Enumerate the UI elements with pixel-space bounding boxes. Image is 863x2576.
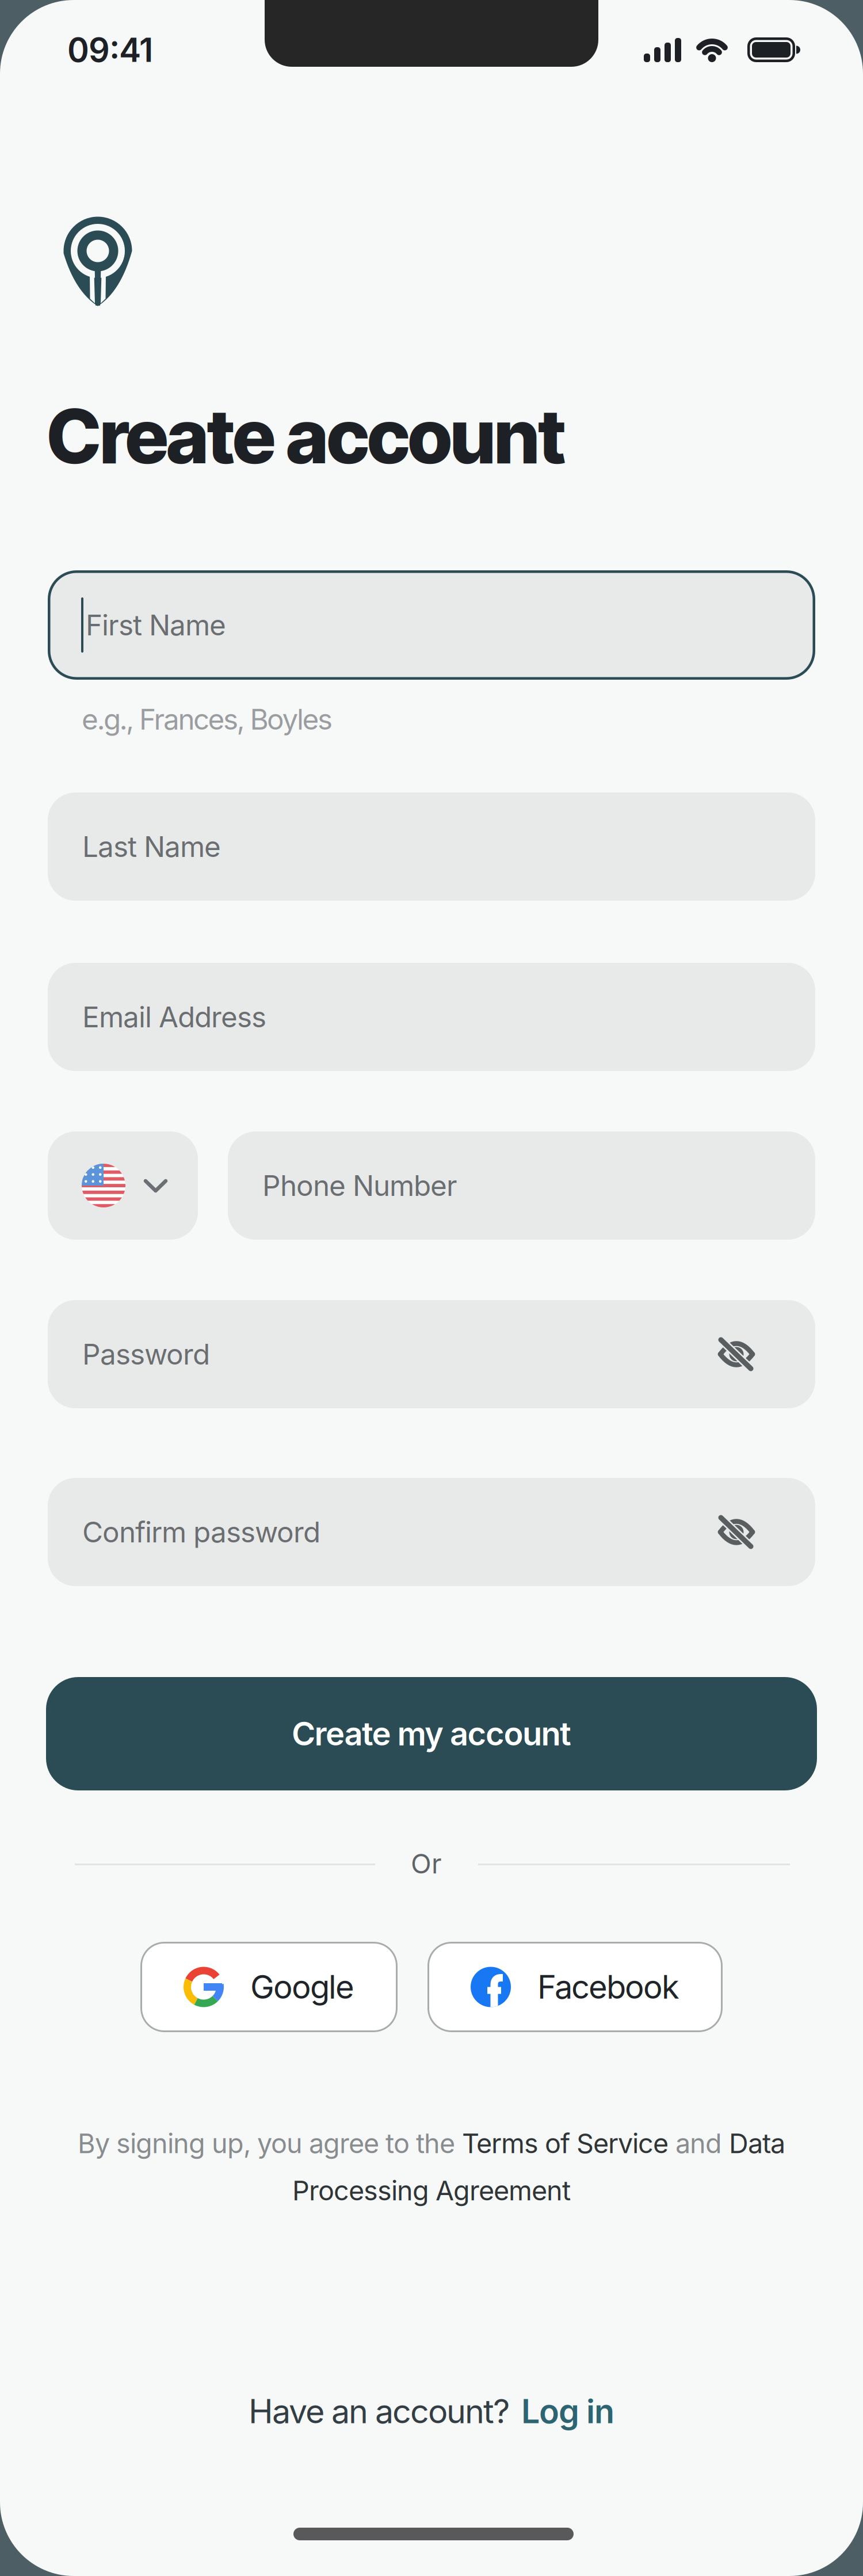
button[interactable]: Phone Number: [228, 1131, 815, 1240]
button[interactable]: Create my account: [46, 1677, 817, 1790]
button[interactable]: Google: [140, 1942, 398, 2032]
staticText: Phone Number: [262, 1168, 457, 1203]
staticText: Or: [411, 1847, 442, 1880]
staticText: Have an account?: [249, 2391, 510, 2431]
button[interactable]: Facebook: [427, 1942, 723, 2032]
staticText: Last Name: [82, 829, 221, 864]
staticText: Processing Agreement: [292, 2174, 571, 2207]
button[interactable]: Password: [48, 1300, 815, 1408]
staticText: Google: [250, 1967, 354, 2006]
staticText: Email Address: [82, 1000, 266, 1034]
button[interactable]: Log in: [521, 2391, 614, 2431]
staticText: Terms of Service: [462, 2127, 669, 2160]
button[interactable]: Terms of Service: [462, 2127, 669, 2160]
staticText: Log in: [521, 2391, 614, 2431]
button[interactable]: Show password: [707, 1505, 766, 1559]
staticText: First Name: [86, 608, 226, 642]
staticText: Create my account: [292, 1714, 571, 1753]
button[interactable]: Select country code: [48, 1131, 198, 1240]
button[interactable]: Last Name: [48, 792, 815, 901]
button[interactable]: Confirm password: [48, 1478, 815, 1586]
button[interactable]: First Name: [48, 570, 815, 680]
staticText: e.g., Frances, Boyles: [82, 702, 333, 736]
staticText: Create account: [47, 391, 566, 481]
button[interactable]: Data: [729, 2127, 785, 2160]
button[interactable]: Email Address: [48, 963, 815, 1071]
staticText: and: [669, 2127, 729, 2160]
staticText: Confirm password: [82, 1515, 320, 1549]
staticText: Facebook: [537, 1967, 679, 2006]
staticText: Data: [729, 2127, 785, 2160]
button[interactable]: Processing Agreement: [292, 2174, 571, 2207]
staticText: By signing up, you agree to the: [78, 2127, 462, 2160]
staticText: Password: [82, 1337, 210, 1371]
staticText: 09:41: [67, 30, 153, 70]
button[interactable]: Show password: [707, 1327, 766, 1381]
